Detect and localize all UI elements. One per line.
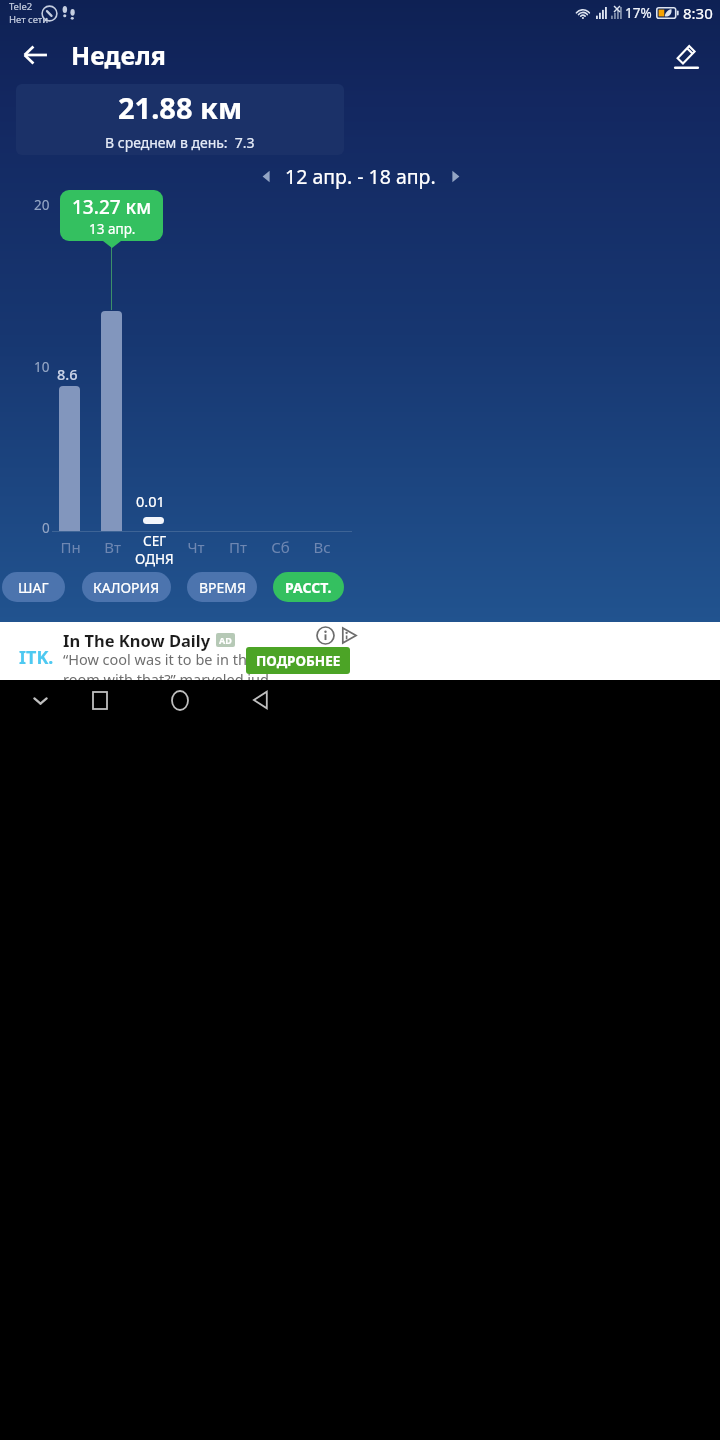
button[interactable]: Редактировать: [664, 33, 708, 77]
staticText: ШАГ: [18, 578, 49, 597]
button[interactable]: [143, 517, 164, 524]
staticText: 0.01: [136, 491, 165, 511]
button[interactable]: ШАГ: [2, 572, 65, 602]
staticText: In The Know Daily: [63, 629, 211, 651]
staticText: room with that?” marveled jud…: [63, 669, 281, 689]
staticText: 21.88 км: [118, 88, 243, 127]
staticText: 13 апр.: [89, 220, 136, 238]
button[interactable]: [59, 386, 80, 531]
button[interactable]: [101, 311, 122, 531]
staticText: 0: [42, 519, 50, 537]
staticText: 17%: [625, 4, 652, 22]
button[interactable]: РАССТ.: [273, 572, 344, 602]
button[interactable]: Главный экран: [150, 680, 210, 720]
button[interactable]: Следующая неделя: [440, 161, 470, 191]
button[interactable]: AdChoices: [335, 622, 361, 648]
button[interactable]: Последние приложения: [70, 680, 130, 720]
staticText: Неделя: [71, 38, 166, 72]
staticText: Tele2: [9, 0, 33, 13]
staticText: Сб: [271, 537, 290, 557]
button[interactable]: 21.88 км: [16, 84, 344, 155]
staticText: 8:30: [683, 3, 713, 23]
staticText: Вс: [313, 537, 331, 557]
staticText: ПОДРОБНЕЕ: [256, 652, 341, 670]
button[interactable]: ITK.: [0, 622, 720, 680]
staticText: ОДНЯ: [135, 550, 174, 568]
button[interactable]: ПОДРОБНЕЕ: [246, 647, 350, 674]
staticText: ВРЕМЯ: [199, 578, 246, 597]
staticText: Нет сети: [9, 13, 49, 26]
staticText: Вт: [104, 537, 121, 557]
button[interactable]: Предыдущая неделя: [251, 161, 281, 191]
staticText: 20: [34, 196, 50, 214]
button[interactable]: Назад: [13, 33, 57, 77]
staticText: “How cool was it to be in the: [63, 649, 256, 669]
button[interactable]: КАЛОРИЯ: [82, 572, 171, 602]
staticText: В среднем в день: 7.3: [105, 133, 255, 152]
button[interactable]: ВРЕМЯ: [187, 572, 257, 602]
button[interactable]: Назад: [230, 680, 290, 720]
staticText: РАССТ.: [285, 578, 332, 597]
staticText: ITK.: [19, 645, 54, 670]
button[interactable]: Скрыть клавиатуру: [10, 680, 70, 720]
staticText: 8.6: [57, 364, 78, 384]
button[interactable]: 13.27 км: [60, 190, 163, 241]
button[interactable]: Информация об объявлении: [312, 622, 338, 648]
staticText: 10: [34, 358, 50, 376]
staticText: КАЛОРИЯ: [93, 578, 160, 597]
staticText: Пт: [229, 537, 247, 557]
staticText: Пн: [60, 537, 81, 557]
staticText: СЕГ: [143, 532, 167, 550]
button[interactable]: 12 апр. - 18 апр.: [285, 163, 436, 190]
staticText: AD: [219, 634, 232, 646]
staticText: Чт: [187, 537, 205, 557]
staticText: 13.27 км: [72, 194, 152, 220]
